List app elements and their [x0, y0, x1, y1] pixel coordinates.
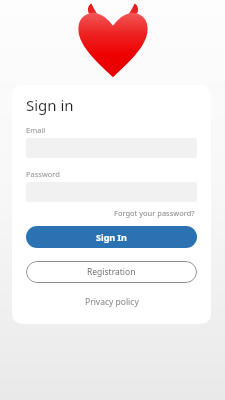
- staticText: Privacy policy: [85, 296, 139, 308]
- button[interactable]: Privacy policy: [80, 294, 144, 310]
- other: App logo: [77, 2, 149, 78]
- button[interactable]: Sign In: [26, 226, 197, 248]
- staticText: Email: [26, 125, 46, 135]
- staticText: Password: [26, 169, 60, 179]
- button[interactable]: Registration: [26, 261, 197, 283]
- staticText: Registration: [87, 266, 136, 278]
- staticText: Sign In: [96, 231, 127, 243]
- staticText: Sign in: [26, 95, 74, 115]
- button[interactable]: Forgot your password?: [112, 206, 197, 220]
- staticText: Forgot your password?: [114, 208, 195, 218]
